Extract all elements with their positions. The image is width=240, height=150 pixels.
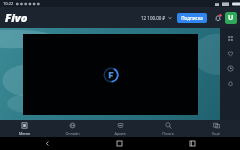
button[interactable]: Home xyxy=(109,137,129,150)
button[interactable]: Архив xyxy=(96,120,144,137)
button[interactable]: History xyxy=(220,61,240,76)
button[interactable]: Programs xyxy=(220,31,240,46)
staticText: Архив xyxy=(114,131,126,136)
staticText: 10:22 xyxy=(3,1,14,6)
staticText: Подписка xyxy=(181,15,203,21)
button[interactable]: 12 100.00 ₽ xyxy=(139,15,174,21)
staticText: Ещё xyxy=(212,131,220,136)
staticText: Fivo xyxy=(5,10,28,25)
button[interactable]: Notifications xyxy=(211,11,224,24)
button[interactable]: Reminders xyxy=(220,76,240,91)
staticText: U xyxy=(228,13,234,23)
button[interactable]: Profile xyxy=(225,12,237,24)
button[interactable]: Меню xyxy=(0,120,48,137)
button[interactable]: Онлайн xyxy=(48,120,96,137)
button[interactable]: Favorites xyxy=(220,46,240,61)
button[interactable]: Back xyxy=(37,137,57,150)
button[interactable]: Подписка xyxy=(177,13,207,23)
staticText: Меню xyxy=(19,131,30,136)
staticText: Онлайн xyxy=(65,131,80,136)
button[interactable]: Ещё xyxy=(192,120,240,137)
staticText: 12 100.00 ₽ xyxy=(141,15,166,21)
button[interactable]: Поиск xyxy=(144,120,192,137)
button[interactable]: Recents xyxy=(182,137,202,150)
button[interactable]: Fivo xyxy=(5,10,28,25)
button[interactable] xyxy=(23,34,198,115)
staticText: Поиск xyxy=(162,131,174,136)
